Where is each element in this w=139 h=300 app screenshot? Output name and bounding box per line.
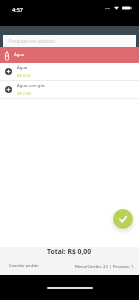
other: Bebidas bbox=[5, 51, 9, 60]
button[interactable]: Confirmar pedido bbox=[113, 209, 133, 229]
button[interactable]: Cancelar pedido bbox=[9, 261, 39, 268]
staticText: 4:57 bbox=[12, 6, 23, 13]
staticText: R$ 7,00 bbox=[17, 91, 31, 96]
staticText: Total: R$ 0,00 bbox=[47, 247, 92, 256]
button[interactable]: Pesquise seu produto bbox=[3, 35, 136, 47]
button[interactable]: Água bbox=[0, 63, 139, 80]
button[interactable]: Água com gás bbox=[0, 81, 139, 98]
staticText: R$ 4,00 bbox=[17, 73, 31, 78]
staticText: Água bbox=[17, 65, 28, 71]
staticText: Pesquise seu produto bbox=[9, 38, 55, 44]
staticText: Água com gás bbox=[17, 83, 45, 89]
button[interactable]: Mesa/Cartão: 22 | Pessoas: 1 bbox=[75, 261, 134, 269]
staticText: Água bbox=[14, 52, 25, 58]
button[interactable]: Bebidas bbox=[0, 47, 139, 63]
